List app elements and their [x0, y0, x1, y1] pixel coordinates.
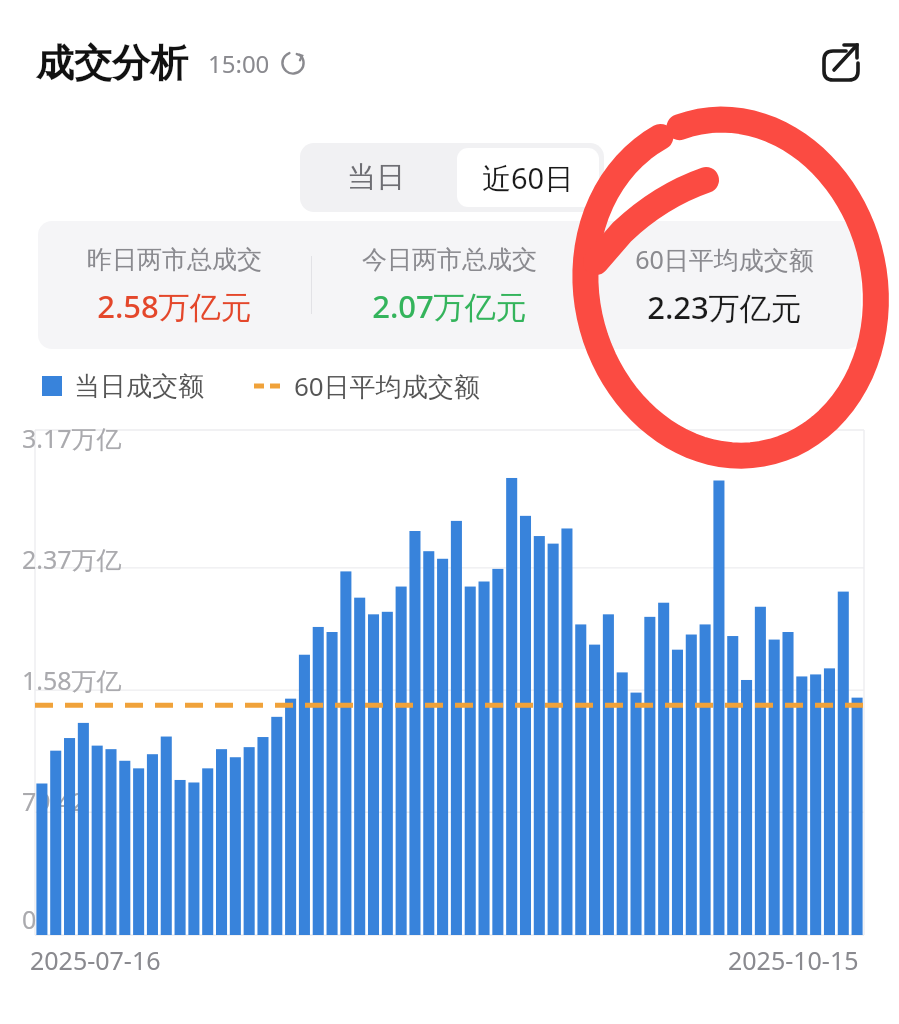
- staticText: 15:00: [208, 47, 270, 80]
- staticText: 成交分析: [36, 39, 188, 87]
- button[interactable]: 近60日: [457, 148, 599, 207]
- staticText: 2.58万亿元: [97, 285, 252, 327]
- button[interactable]: Share: [813, 35, 869, 91]
- button[interactable]: 60日平均成交额: [587, 242, 861, 328]
- staticText: 当日: [347, 159, 405, 196]
- button[interactable]: 昨日两市总成交: [38, 244, 311, 327]
- staticText: 2025-07-16: [30, 943, 161, 977]
- button[interactable]: 今日两市总成交: [312, 244, 586, 327]
- staticText: 79.42: [22, 784, 86, 818]
- staticText: 昨日两市总成交: [87, 244, 262, 275]
- staticText: 0: [22, 902, 37, 936]
- staticText: 2.37万亿: [22, 542, 122, 576]
- staticText: 1.58万亿: [22, 663, 122, 697]
- staticText: 60日平均成交额: [635, 242, 814, 276]
- staticText: 近60日: [482, 158, 574, 198]
- staticText: 当日成交额: [74, 370, 204, 403]
- staticText: 2.23万亿元: [647, 286, 802, 328]
- staticText: 今日两市总成交: [362, 244, 537, 275]
- staticText: 2025-10-15: [728, 943, 859, 977]
- staticText: 60日平均成交额: [294, 368, 480, 404]
- button[interactable]: 当日: [300, 143, 452, 212]
- staticText: 3.17万亿: [22, 421, 122, 455]
- staticText: 2.07万亿元: [372, 285, 527, 327]
